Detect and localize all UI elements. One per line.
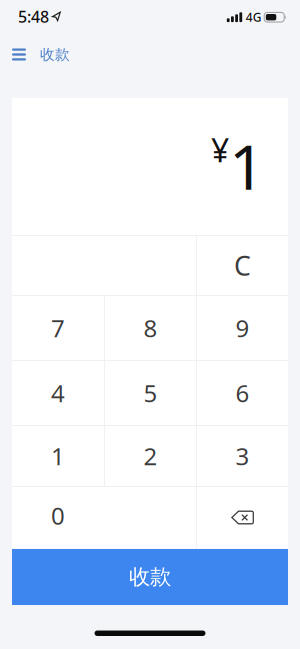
button[interactable]: 5 xyxy=(105,361,196,425)
button[interactable]: 6 xyxy=(197,361,288,425)
button[interactable]: Menu xyxy=(8,44,30,65)
staticText: 7 xyxy=(51,312,65,344)
staticText: 5 xyxy=(143,377,157,409)
staticText: 收款 xyxy=(40,45,70,63)
staticText: 0 xyxy=(51,500,65,531)
button[interactable]: 9 xyxy=(197,296,288,360)
button[interactable]: 收款 xyxy=(12,549,288,605)
button[interactable]: 0 xyxy=(12,487,196,548)
staticText: 3 xyxy=(235,440,249,472)
button[interactable]: 8 xyxy=(105,296,196,360)
button[interactable]: 1 xyxy=(12,426,104,486)
staticText: C xyxy=(234,248,251,283)
staticText: 1 xyxy=(51,440,65,472)
button[interactable]: Backspace xyxy=(197,487,288,548)
staticText: 1 xyxy=(229,124,265,207)
staticText: 4G xyxy=(246,9,262,25)
button[interactable]: 3 xyxy=(197,426,288,486)
button[interactable]: 2 xyxy=(105,426,196,486)
staticText: 5:48 xyxy=(18,6,49,27)
staticText: 6 xyxy=(235,377,249,409)
staticText: 2 xyxy=(143,440,157,472)
button[interactable]: C xyxy=(197,236,288,295)
staticText: 8 xyxy=(143,312,157,344)
staticText: 4 xyxy=(51,377,65,409)
button[interactable]: 4 xyxy=(12,361,104,425)
staticText: 收款 xyxy=(129,564,171,590)
staticText: ¥ xyxy=(211,128,229,171)
staticText: 9 xyxy=(235,312,249,344)
button[interactable]: 7 xyxy=(12,296,104,360)
